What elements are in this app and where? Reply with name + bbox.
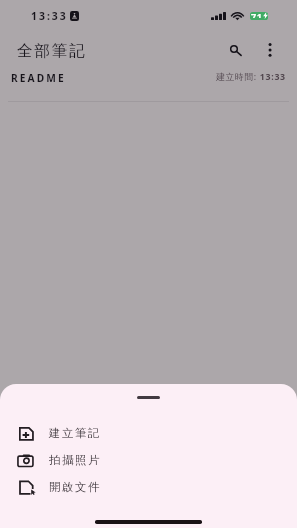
button[interactable]: 拍攝照片 <box>0 447 297 474</box>
button[interactable]: README <box>0 64 297 101</box>
staticText: README <box>11 71 66 85</box>
button[interactable]: 建立筆記 <box>0 420 297 447</box>
button[interactable]: More options <box>258 37 282 61</box>
staticText: 拍攝照片 <box>49 453 101 467</box>
staticText: 開啟文件 <box>49 480 101 494</box>
staticText: 建立筆記 <box>49 426 101 440</box>
staticText: 13:33 <box>31 9 68 23</box>
staticText: 71 <box>251 12 263 18</box>
staticText: 全部筆記 <box>17 41 87 61</box>
button[interactable]: Search <box>222 37 246 61</box>
button[interactable]: 開啟文件 <box>0 474 297 501</box>
staticText: 建立時間: 13:33 <box>216 71 286 83</box>
